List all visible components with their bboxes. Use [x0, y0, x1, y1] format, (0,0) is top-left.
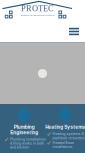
staticText: Engineering [10, 130, 38, 135]
staticText: and kitchen [10, 145, 29, 149]
staticText: Plumbing [14, 124, 35, 130]
staticText: pipelaids renovation [52, 136, 85, 140]
staticText: PROTEC [21, 4, 54, 13]
staticText: BUILD & MAINTENANCE [20, 14, 54, 17]
button[interactable]: Heating Systems [42, 104, 85, 153]
staticText: Heating systems & [52, 132, 83, 136]
button[interactable]: Menu [65, 24, 83, 39]
staticText: Heating Systems [45, 124, 85, 130]
staticText: Heated floors [52, 141, 74, 145]
staticText: Plumbing installations [10, 137, 46, 141]
staticText: & tiling works in bath [10, 141, 44, 145]
staticText: installations [52, 145, 72, 149]
button[interactable]: Plumbing [0, 104, 42, 153]
